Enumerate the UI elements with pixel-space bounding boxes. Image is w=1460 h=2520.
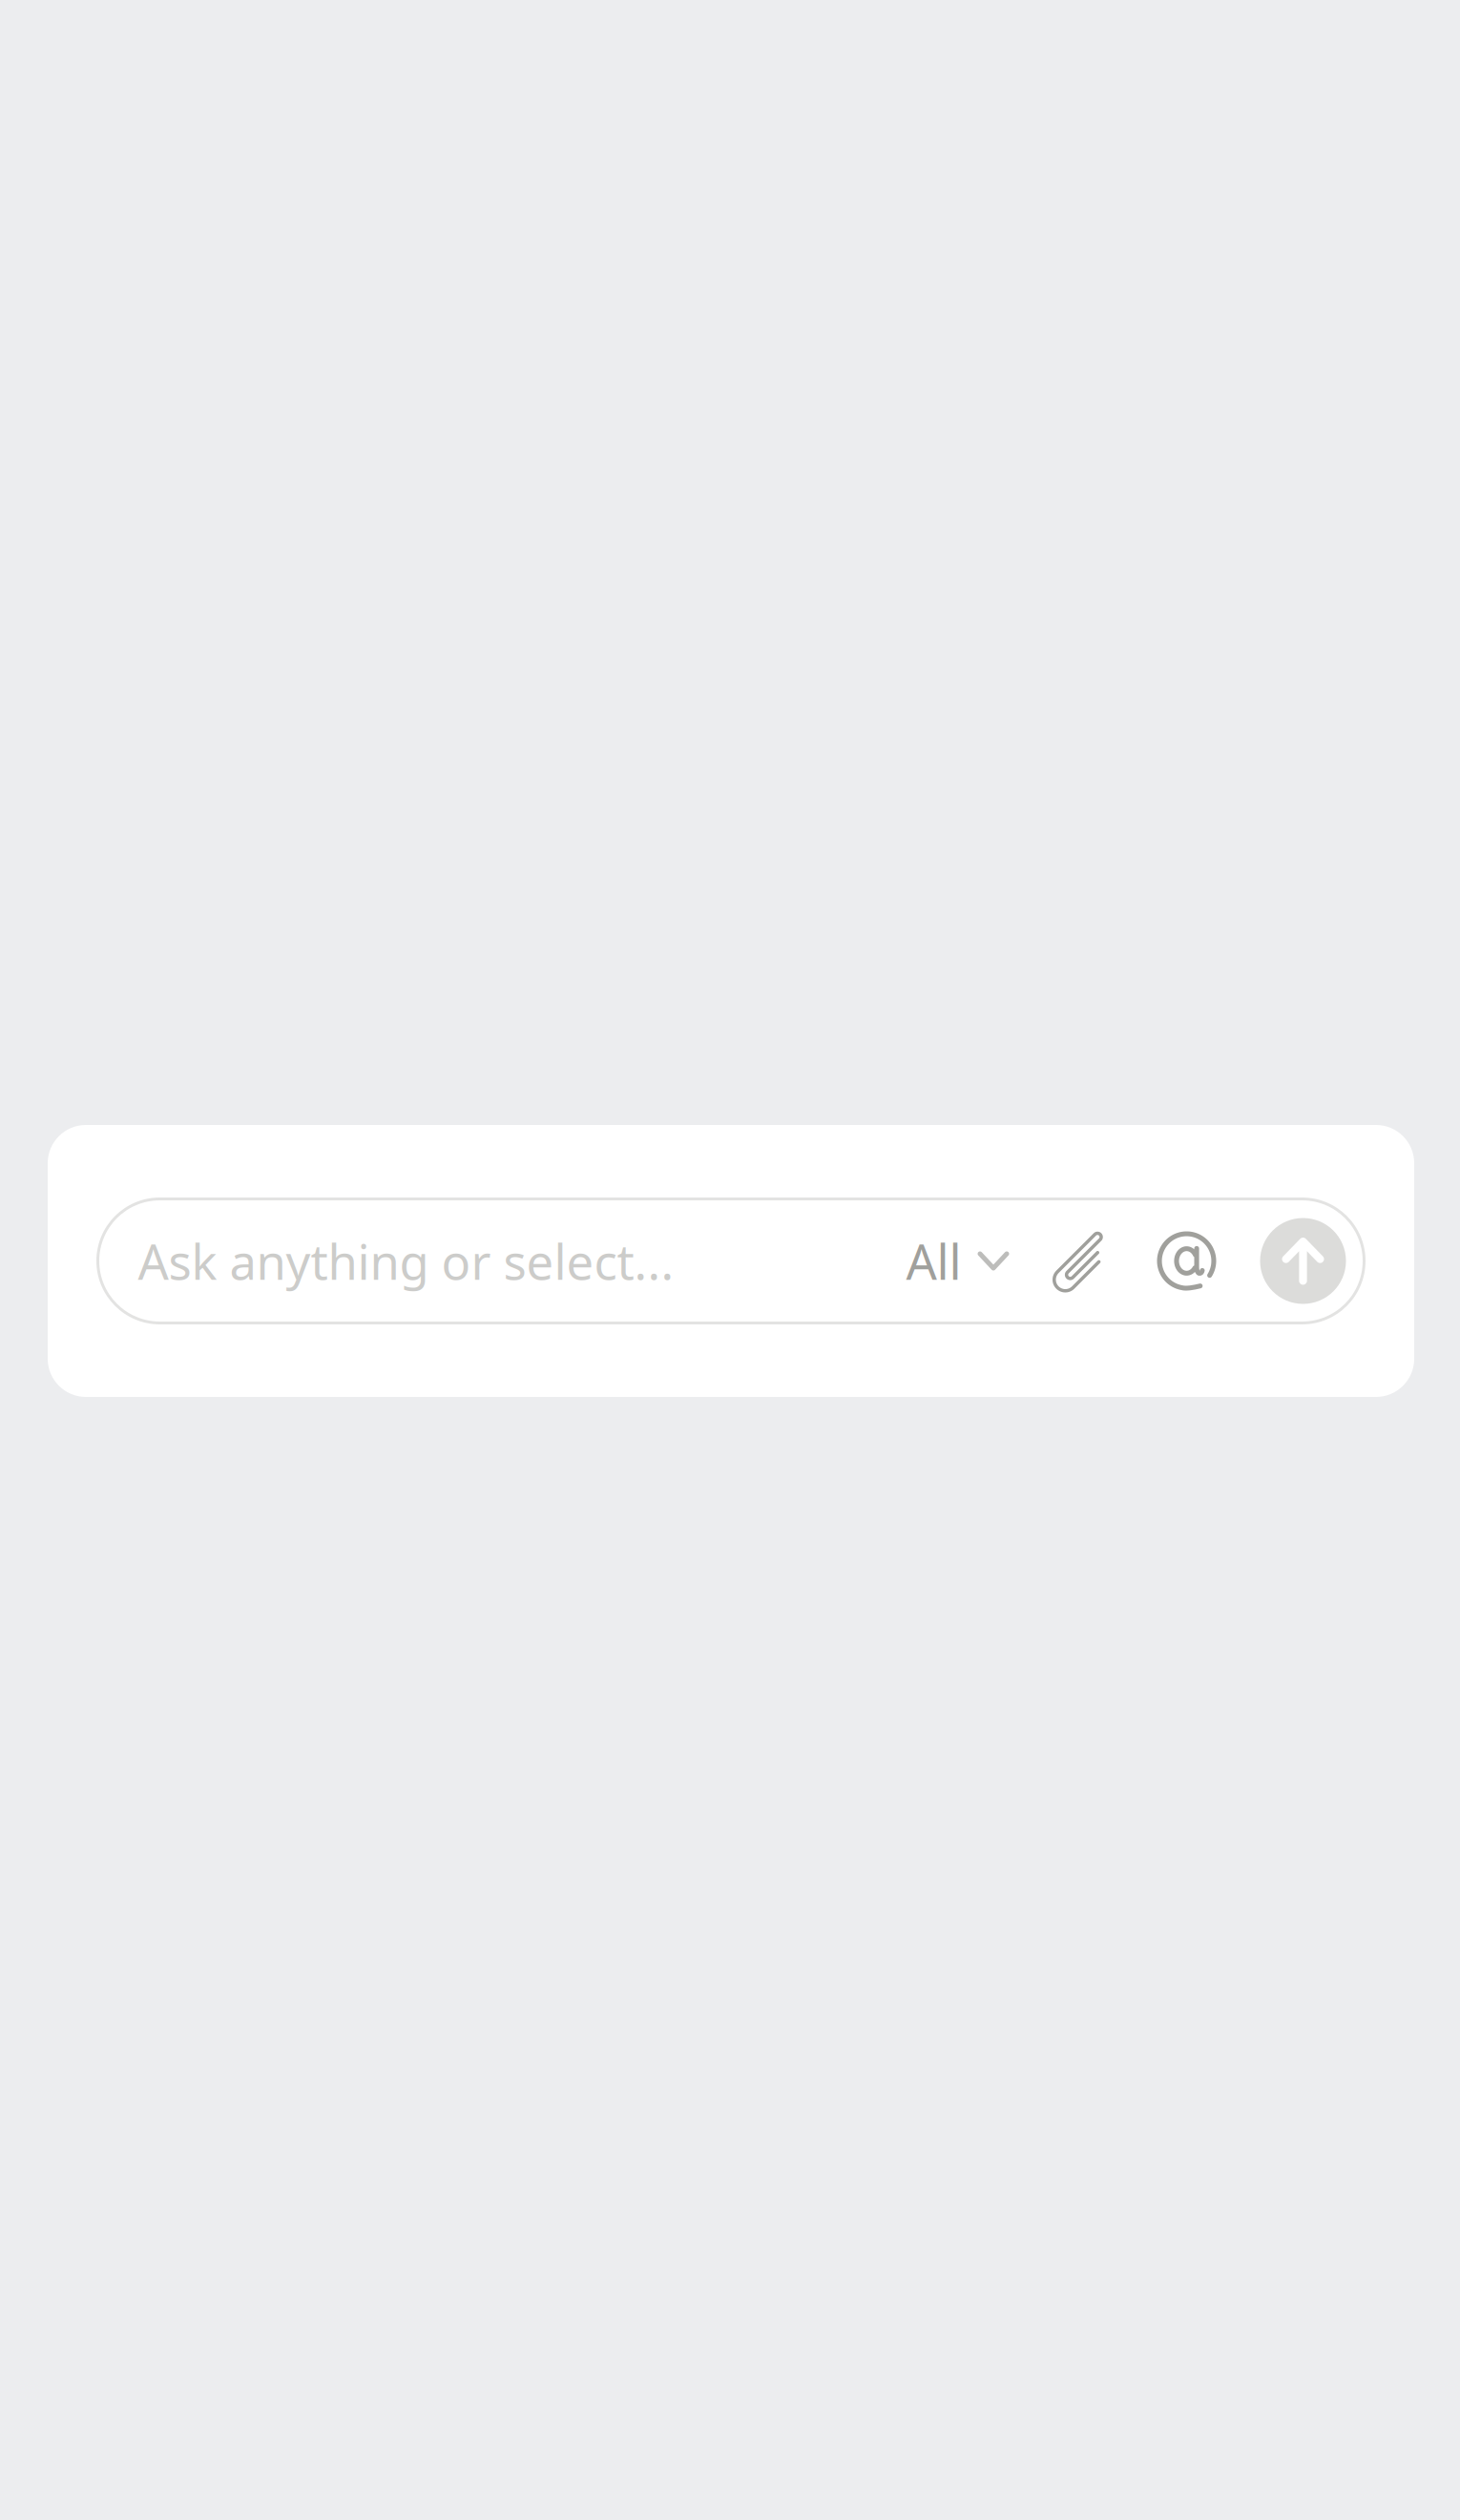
button[interactable]: Ask anything or select...	[138, 1199, 906, 1323]
staticText: Ask anything or select...	[138, 1229, 674, 1293]
button[interactable]: Send	[1260, 1218, 1346, 1304]
staticText: All	[906, 1229, 961, 1293]
button[interactable]: Mention	[1157, 1231, 1216, 1291]
button[interactable]: Attach file	[1049, 1226, 1119, 1296]
button[interactable]: All	[906, 1199, 1009, 1323]
